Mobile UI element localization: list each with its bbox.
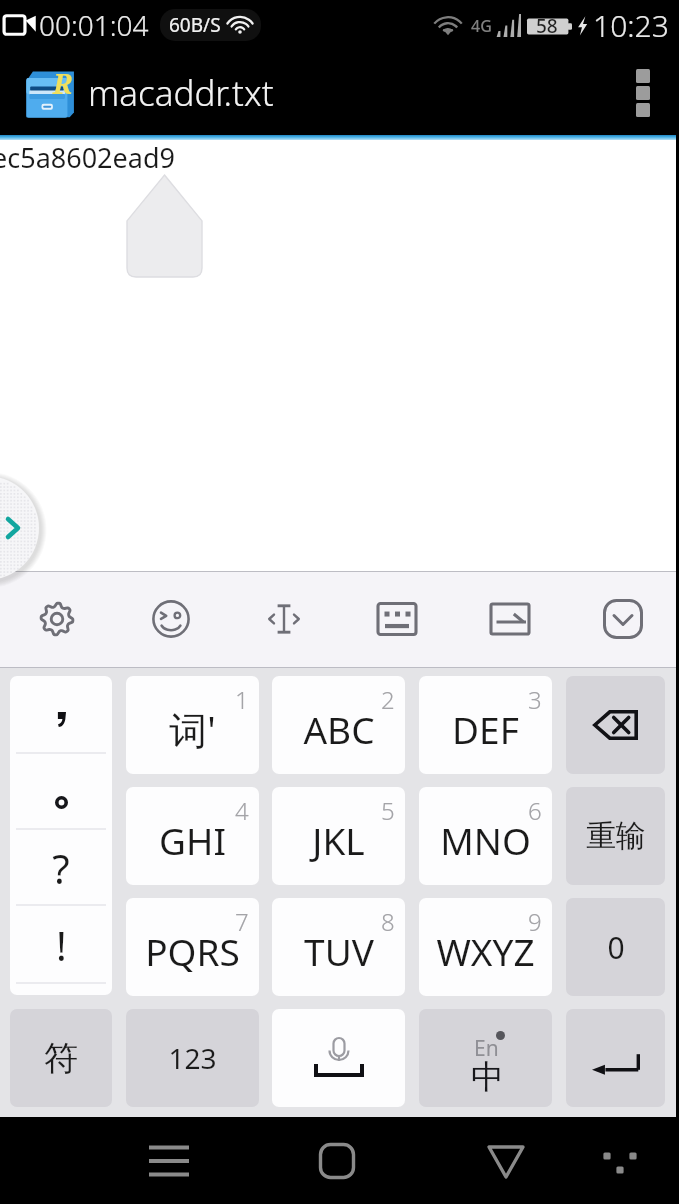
button[interactable]: TUV — [272, 902, 405, 1000]
button[interactable]: 重输 — [566, 787, 665, 885]
button[interactable] — [10, 764, 112, 840]
button[interactable]: Hide keyboard — [566, 571, 679, 667]
staticText: 5 — [381, 794, 395, 820]
button[interactable]: More options — [577, 1117, 663, 1204]
button[interactable]: Move cursor — [227, 571, 340, 667]
button[interactable]: Enter — [566, 1009, 665, 1107]
staticText: 1 — [235, 683, 249, 709]
button[interactable]: ? — [10, 830, 112, 906]
staticText: En — [474, 1034, 499, 1063]
staticText: 重输 — [586, 817, 646, 855]
staticText: ec5a8602ead9 — [0, 139, 175, 176]
button[interactable]: MNO — [419, 791, 552, 889]
staticText: 6 — [528, 794, 542, 820]
button[interactable]: WXYZ — [419, 902, 552, 1000]
button[interactable]: ! — [10, 906, 112, 984]
staticText: PQRS — [145, 926, 240, 976]
staticText: DEF — [452, 704, 519, 754]
staticText: 60B/S — [169, 12, 221, 38]
staticText: 4G — [471, 15, 492, 37]
button[interactable]: Expand keyboard panel — [0, 498, 46, 608]
staticText: ABC — [303, 704, 375, 754]
button[interactable]: DEF — [419, 680, 552, 778]
staticText: 58 — [536, 13, 558, 39]
staticText: 4 — [235, 794, 249, 820]
staticText: 0 — [607, 927, 625, 968]
button[interactable] — [10, 676, 112, 753]
button[interactable]: 符 — [10, 1009, 112, 1107]
staticText: 8 — [381, 905, 395, 931]
button[interactable]: Settings — [0, 571, 114, 667]
button[interactable]: More options — [607, 50, 679, 135]
staticText: 中 — [471, 1056, 504, 1098]
button[interactable]: 123 — [126, 1009, 259, 1107]
staticText: MNO — [440, 815, 531, 865]
staticText: 9 — [528, 905, 542, 931]
button[interactable]: JKL — [272, 791, 405, 889]
staticText: 10:23 — [593, 5, 669, 46]
staticText: 123 — [168, 1039, 217, 1077]
staticText: 符 — [44, 1037, 78, 1080]
button[interactable]: 词' — [126, 680, 259, 778]
staticText: 00:01:04 — [39, 6, 149, 44]
button[interactable]: Backspace — [566, 676, 665, 774]
button[interactable]: Menu — [126, 1117, 212, 1204]
staticText: 3 — [528, 683, 542, 709]
staticText: macaddr.txt — [88, 69, 274, 117]
button[interactable]: GHI — [126, 791, 259, 889]
staticText: 词' — [169, 703, 216, 755]
staticText: R — [53, 65, 73, 102]
staticText: TUV — [304, 926, 374, 976]
button[interactable]: Back — [463, 1117, 549, 1204]
button[interactable]: Emoji — [114, 571, 227, 667]
staticText: JKL — [312, 815, 365, 865]
staticText: 7 — [235, 905, 249, 931]
staticText: GHI — [159, 815, 226, 865]
button[interactable]: En — [419, 1009, 552, 1107]
staticText: ? — [52, 841, 70, 895]
staticText: 2 — [381, 683, 395, 709]
button[interactable]: Home — [294, 1117, 380, 1204]
staticText: WXYZ — [436, 926, 535, 976]
button[interactable]: PQRS — [126, 902, 259, 1000]
button[interactable]: Space — [272, 1009, 405, 1107]
staticText: ! — [56, 918, 67, 972]
button[interactable]: ABC — [272, 680, 405, 778]
button[interactable]: 0 — [566, 898, 665, 996]
button[interactable]: Keyboard layout — [340, 571, 453, 667]
button[interactable]: One hand mode — [453, 571, 566, 667]
